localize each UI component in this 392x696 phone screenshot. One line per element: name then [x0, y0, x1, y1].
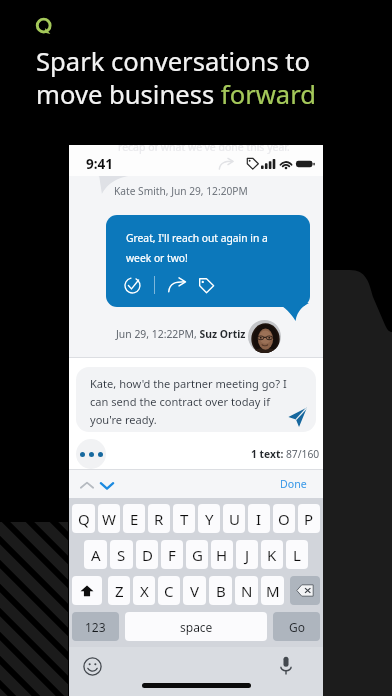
staticText: G — [192, 545, 203, 565]
staticText: C — [164, 581, 174, 601]
staticText: Spark conversations to move business for… — [36, 44, 316, 111]
staticText: U — [229, 509, 240, 529]
button[interactable]: R — [148, 504, 170, 533]
button[interactable]: 123 — [72, 612, 119, 641]
staticText: K — [267, 545, 277, 565]
staticText: L — [293, 545, 301, 565]
staticText: R — [154, 509, 164, 529]
button[interactable]: space — [125, 612, 267, 641]
button[interactable]: C — [158, 576, 180, 605]
staticText: space — [180, 619, 213, 635]
button[interactable]: J — [236, 540, 258, 569]
button[interactable]: Go — [273, 612, 320, 641]
button[interactable]: V — [183, 576, 206, 605]
staticText: Z — [115, 581, 124, 601]
button[interactable]: S — [110, 540, 133, 569]
button[interactable]: M — [261, 576, 284, 605]
button[interactable]: G — [186, 540, 208, 569]
staticText: T — [180, 509, 189, 529]
staticText: F — [168, 545, 176, 565]
button[interactable]: T — [173, 504, 195, 533]
button[interactable]: B — [209, 576, 232, 605]
staticText: Go — [289, 619, 305, 635]
staticText: H — [216, 545, 228, 565]
staticText: W — [102, 509, 116, 529]
staticText: D — [142, 545, 153, 565]
button[interactable]: Z — [108, 576, 130, 605]
button[interactable]: N — [235, 576, 258, 605]
staticText: A — [91, 545, 101, 565]
staticText: B — [216, 581, 226, 601]
button[interactable]: I — [248, 504, 270, 533]
button[interactable]: Done — [280, 477, 307, 491]
staticText: J — [245, 545, 250, 565]
button[interactable]: K — [261, 540, 283, 569]
button[interactable]: L — [286, 540, 308, 569]
staticText: S — [117, 545, 126, 565]
button[interactable]: Forward — [168, 277, 187, 293]
staticText: M — [266, 581, 280, 601]
staticText: 123 — [85, 619, 106, 635]
staticText: Kate, how'd the partner meeting go? I ca… — [90, 376, 287, 427]
button[interactable]: W — [98, 504, 120, 533]
button[interactable]: A — [84, 540, 107, 569]
button[interactable]: Shift — [72, 576, 102, 605]
button[interactable] — [76, 367, 316, 432]
button[interactable]: H — [211, 540, 233, 569]
button[interactable]: X — [133, 576, 155, 605]
button[interactable]: Great, I'll reach out again in a week or… — [106, 215, 310, 307]
staticText: Great, I'll reach out again in a week or… — [126, 231, 268, 265]
staticText: E — [130, 509, 139, 529]
button[interactable]: U — [223, 504, 245, 533]
button[interactable]: Task — [124, 277, 141, 294]
staticText: 9:41 — [86, 155, 113, 173]
button[interactable]: O — [273, 504, 295, 533]
button[interactable]: Tag — [198, 277, 215, 294]
staticText: recap of what we've done this year. — [118, 145, 290, 154]
staticText: P — [304, 509, 314, 529]
button[interactable]: Dictate — [280, 656, 292, 676]
button[interactable]: P — [298, 504, 320, 533]
staticText: I — [256, 509, 262, 529]
staticText: Q — [78, 509, 90, 529]
button[interactable]: Send — [288, 407, 307, 427]
button[interactable]: F — [161, 540, 183, 569]
button[interactable]: Q — [72, 504, 95, 533]
staticText: 1 text: 87/160 — [251, 447, 320, 461]
staticText: O — [278, 509, 290, 529]
button[interactable]: Next field — [100, 479, 114, 493]
button[interactable]: Previous field — [80, 479, 94, 493]
button[interactable]: Delete — [290, 576, 320, 605]
button[interactable]: More options — [76, 439, 106, 469]
staticText: Jun 29, 12:22PM, Suz Ortiz — [116, 327, 246, 341]
staticText: X — [140, 581, 149, 601]
button[interactable]: D — [136, 540, 158, 569]
staticText: N — [241, 581, 253, 601]
staticText: Y — [205, 509, 214, 529]
button[interactable]: Emoji — [83, 657, 102, 676]
staticText: V — [190, 581, 200, 601]
button[interactable]: Y — [198, 504, 220, 533]
staticText: Kate Smith, Jun 29, 12:20PM — [114, 184, 248, 198]
button[interactable]: E — [123, 504, 145, 533]
